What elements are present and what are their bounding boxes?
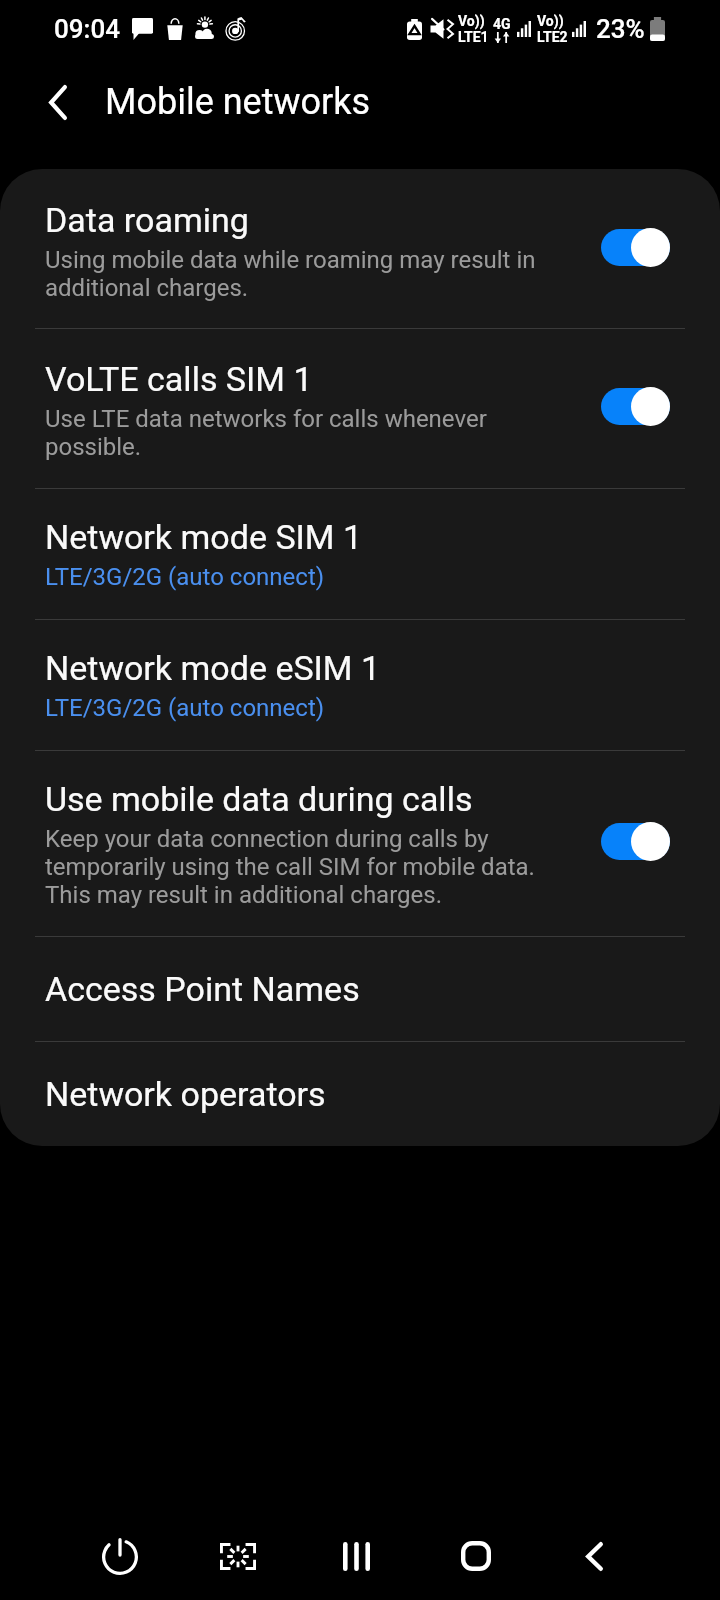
staticText: Network mode eSIM 1 — [45, 647, 381, 689]
button[interactable]: Toggle — [601, 226, 670, 268]
staticText: Network operators — [45, 1073, 326, 1115]
staticText: Vo)) — [537, 13, 564, 29]
staticText: 09:04 — [54, 14, 120, 44]
button[interactable]: Navigate up — [29, 73, 87, 131]
button[interactable]: Network mode SIM 1 — [0, 488, 720, 619]
button[interactable]: Screenshot — [179, 1512, 297, 1600]
button[interactable]: Network operators — [0, 1041, 720, 1146]
button[interactable]: Data roaming — [0, 169, 720, 328]
button[interactable]: Access Point Names — [0, 936, 720, 1041]
staticText: Vo)) — [458, 13, 485, 29]
staticText: VoLTE calls SIM 1 — [45, 358, 313, 400]
staticText: 4G — [493, 16, 511, 32]
button[interactable]: Toggle — [601, 385, 670, 427]
button[interactable]: Home — [416, 1512, 535, 1600]
staticText: Access Point Names — [45, 968, 360, 1010]
staticText: Use LTE data networks for calls whenever… — [45, 405, 581, 461]
button[interactable]: Network mode eSIM 1 — [0, 619, 720, 750]
staticText: LTE/3G/2G (auto connect) — [45, 563, 325, 591]
staticText: Network mode SIM 1 — [45, 516, 363, 558]
button[interactable]: Toggle — [601, 820, 670, 862]
staticText: 23% — [596, 14, 645, 44]
staticText: LTE/3G/2G (auto connect) — [45, 694, 325, 722]
staticText: LTE1 — [458, 29, 489, 45]
button[interactable]: Use mobile data during calls — [0, 750, 720, 936]
staticText: Mobile networks — [105, 81, 371, 123]
staticText: LTE2 — [537, 29, 568, 45]
staticText: Use mobile data during calls — [45, 778, 473, 820]
button[interactable]: Recent apps — [297, 1512, 416, 1600]
button[interactable]: Back — [535, 1512, 654, 1600]
staticText: Using mobile data while roaming may resu… — [45, 246, 581, 302]
button[interactable]: Power — [61, 1512, 179, 1600]
button[interactable]: VoLTE calls SIM 1 — [0, 328, 720, 488]
staticText: Keep your data connection during calls b… — [45, 825, 581, 909]
staticText: Data roaming — [45, 199, 249, 241]
